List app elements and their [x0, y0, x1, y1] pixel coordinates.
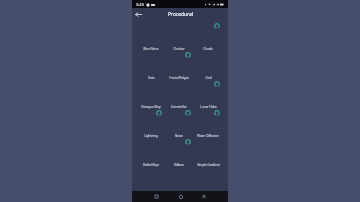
button[interactable]: [136, 111, 165, 140]
button[interactable]: Home: [175, 191, 186, 202]
button[interactable]: [194, 82, 223, 111]
staticText: Water Diffusion: [197, 134, 219, 138]
button[interactable]: Back: [198, 191, 209, 202]
staticText: Hexagon Map: [141, 105, 161, 109]
staticText: Lightning: [144, 134, 158, 138]
staticText: Lunar Flake: [200, 105, 217, 109]
button[interactable]: [194, 53, 223, 82]
staticText: Radial Rays: [143, 163, 159, 167]
button[interactable]: [194, 24, 223, 53]
staticText: Blue Noise: [143, 47, 159, 51]
staticText: Procedural: [168, 11, 193, 18]
button[interactable]: [136, 82, 165, 111]
staticText: 3:45: [136, 2, 144, 7]
button[interactable]: [194, 140, 223, 169]
staticText: Clouds: [203, 47, 213, 51]
staticText: Checker: [173, 47, 185, 51]
staticText: Fractal Ridges: [169, 76, 189, 80]
button[interactable]: [165, 111, 194, 140]
button[interactable]: Back: [133, 9, 144, 20]
button[interactable]: [136, 24, 165, 53]
button[interactable]: Recent apps: [151, 191, 162, 202]
button[interactable]: [136, 53, 165, 82]
button[interactable]: [165, 53, 194, 82]
button[interactable]: [165, 140, 194, 169]
staticText: Noise: [175, 134, 183, 138]
button[interactable]: [165, 82, 194, 111]
staticText: Interstellar: [171, 105, 187, 109]
staticText: Ribbon: [174, 163, 184, 167]
button[interactable]: [165, 24, 194, 53]
button[interactable]: [136, 140, 165, 169]
staticText: Dots: [148, 76, 155, 80]
staticText: Simple Gradient: [197, 163, 220, 167]
button[interactable]: [194, 111, 223, 140]
staticText: Grid: [205, 76, 212, 80]
